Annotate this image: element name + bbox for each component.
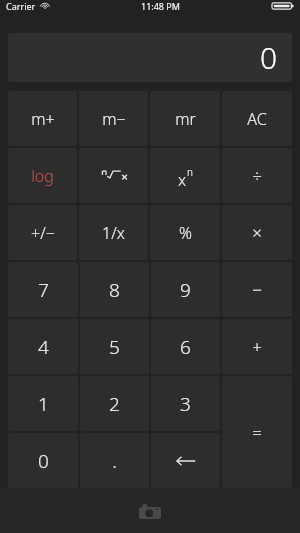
staticText: 8 (109, 277, 120, 303)
staticText: AC (247, 108, 267, 130)
button[interactable]: 7 (8, 262, 78, 317)
button[interactable]: Camera (132, 493, 168, 529)
button[interactable]: mr (150, 91, 220, 146)
button[interactable]: 1/x (79, 205, 148, 260)
button[interactable]: 1 (8, 376, 78, 431)
staticText: × (252, 221, 262, 244)
button[interactable]: 6 (151, 319, 220, 374)
button[interactable]: 2 (80, 376, 149, 431)
staticText: 7 (38, 277, 49, 303)
staticText: 3 (180, 391, 191, 417)
staticText: 6 (180, 334, 191, 360)
staticText: m+ (31, 108, 55, 130)
staticText: % (179, 222, 192, 244)
staticText: = (252, 421, 262, 444)
staticText: 9 (180, 277, 191, 303)
staticText: m− (102, 108, 126, 130)
staticText: 4 (38, 334, 49, 360)
staticText: − (252, 278, 262, 301)
staticText: log (31, 165, 54, 187)
staticText: 2 (109, 391, 120, 417)
staticText: +/− (31, 222, 55, 244)
staticText: n (187, 165, 193, 179)
staticText: 5 (109, 334, 120, 360)
button[interactable]: AC (222, 91, 292, 146)
button[interactable]: 3 (151, 376, 220, 431)
staticText: 11:48 PM (141, 0, 180, 12)
button[interactable]: 4 (8, 319, 78, 374)
staticText: 1 (38, 391, 49, 417)
button[interactable]: × (222, 205, 292, 260)
button[interactable]: . (80, 433, 149, 488)
staticText: x (178, 169, 187, 191)
button[interactable]: +/− (8, 205, 77, 260)
staticText: Carrier (6, 0, 36, 12)
button[interactable]: − (222, 262, 292, 317)
button[interactable]: 9 (151, 262, 220, 317)
button[interactable]: log (8, 148, 77, 203)
button[interactable]: % (150, 205, 220, 260)
button[interactable]: x to the n (150, 148, 220, 203)
staticText: 0 (260, 37, 278, 78)
button[interactable]: m− (79, 91, 148, 146)
button[interactable]: Backspace (151, 433, 220, 488)
staticText: ÷ (252, 164, 262, 187)
button[interactable]: ÷ (222, 148, 292, 203)
button[interactable]: nth root of x (79, 148, 148, 203)
staticText: mr (175, 108, 196, 130)
button[interactable]: = (222, 376, 292, 488)
button[interactable]: 0 (8, 433, 78, 488)
button[interactable]: 5 (80, 319, 149, 374)
staticText: 0 (38, 448, 49, 474)
button[interactable]: m+ (8, 91, 77, 146)
button[interactable]: 8 (80, 262, 149, 317)
staticText: . (112, 448, 117, 474)
button[interactable]: + (222, 319, 292, 374)
staticText: 1/x (102, 222, 125, 244)
staticText: + (252, 335, 262, 358)
